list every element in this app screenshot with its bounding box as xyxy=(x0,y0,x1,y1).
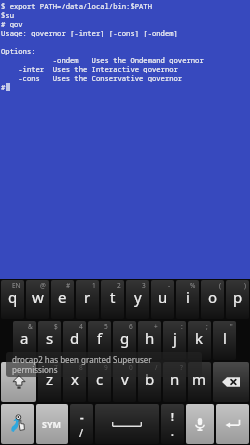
staticText: m xyxy=(192,369,207,389)
staticText: - xyxy=(80,409,84,424)
staticText: # xyxy=(66,281,71,290)
button[interactable]: $ xyxy=(38,321,61,360)
button[interactable]: 6 xyxy=(113,321,136,360)
staticText: : xyxy=(181,322,183,331)
staticText: p xyxy=(233,287,243,307)
staticText: v xyxy=(121,369,129,389)
button[interactable]: - xyxy=(151,280,174,319)
staticText: j xyxy=(173,328,177,348)
button[interactable]: 5 xyxy=(88,321,111,360)
staticText: " xyxy=(230,322,233,331)
staticText: -ondem Uses the Ondemand governor xyxy=(1,55,204,64)
staticText: & xyxy=(28,322,33,331)
staticText: $ export PATH=/data/local/bin:$PATH xyxy=(1,1,152,10)
staticText: n xyxy=(170,369,180,389)
button[interactable]: - xyxy=(70,404,93,444)
staticText: h xyxy=(145,328,155,348)
staticText: / xyxy=(79,425,84,440)
button[interactable]: Space xyxy=(95,404,159,444)
staticText: t xyxy=(110,287,116,307)
staticText: drocap2 has been granted Superuser permi… xyxy=(12,354,196,375)
staticText: + xyxy=(154,322,158,331)
staticText: @ xyxy=(40,281,46,290)
button[interactable]: Backspace xyxy=(213,362,249,402)
button[interactable]: Voice input xyxy=(186,404,214,444)
staticText: 9 xyxy=(104,363,108,372)
staticText: ) xyxy=(244,281,246,290)
staticText: 1 xyxy=(92,281,96,290)
staticText: EN xyxy=(12,281,21,290)
staticText: $ xyxy=(54,322,58,331)
staticText: x xyxy=(71,369,79,389)
staticText: s xyxy=(46,328,54,348)
button[interactable]: ? xyxy=(163,362,186,402)
button[interactable]: 9 xyxy=(88,362,111,402)
staticText: SYM xyxy=(42,418,62,430)
staticText: Options: xyxy=(1,46,36,55)
button[interactable]: % xyxy=(176,280,199,319)
button[interactable]: # xyxy=(51,280,74,319)
button[interactable]: 2 xyxy=(101,280,124,319)
staticText: y xyxy=(134,287,142,307)
staticText: b xyxy=(145,369,155,389)
button[interactable]: ) xyxy=(226,280,249,319)
staticText: e xyxy=(58,287,67,307)
button[interactable]: 7 xyxy=(38,362,61,402)
button[interactable]: m xyxy=(188,362,211,402)
staticText: g xyxy=(120,328,130,348)
staticText: $su xyxy=(1,10,14,19)
staticText: 0 xyxy=(129,363,133,372)
staticText: r xyxy=(84,287,91,307)
staticText: ! xyxy=(171,410,174,424)
staticText: o xyxy=(208,287,218,307)
staticText: -inter Uses the Interactive governor xyxy=(1,64,178,73)
staticText: l xyxy=(223,328,227,348)
button[interactable]: / xyxy=(138,362,161,402)
staticText: w xyxy=(32,287,44,307)
staticText: ? xyxy=(180,363,183,372)
staticText: Usage: governor [-inter] [-cons] [-ondem… xyxy=(1,28,178,37)
staticText: # gov xyxy=(1,19,23,28)
button[interactable]: Shift xyxy=(1,362,36,402)
staticText: 8 xyxy=(79,363,83,372)
staticText: # xyxy=(1,82,6,91)
staticText: - xyxy=(168,281,171,290)
button[interactable]: & xyxy=(13,321,36,360)
button[interactable]: ; xyxy=(188,321,211,360)
button[interactable]: : xyxy=(163,321,186,360)
button[interactable]: + xyxy=(138,321,161,360)
staticText: q xyxy=(8,287,18,307)
staticText: . xyxy=(171,425,174,439)
staticText: z xyxy=(46,369,54,389)
staticText: c xyxy=(96,369,104,389)
staticText: 7 xyxy=(54,363,58,372)
staticText: d xyxy=(70,328,80,348)
button[interactable]: Input method xyxy=(1,404,34,444)
button[interactable]: EN xyxy=(1,280,24,319)
staticText: 5 xyxy=(104,322,108,331)
button[interactable]: ( xyxy=(201,280,224,319)
staticText: f xyxy=(97,328,103,348)
button[interactable]: " xyxy=(213,321,236,360)
button[interactable]: 4 xyxy=(63,321,86,360)
staticText: k xyxy=(195,328,204,348)
button[interactable]: @ xyxy=(26,280,49,319)
button[interactable]: 0 xyxy=(113,362,136,402)
button[interactable]: Symbols xyxy=(36,404,68,444)
staticText: ( xyxy=(219,281,221,290)
staticText: -cons Uses the Conservative governor xyxy=(1,73,183,82)
staticText: % xyxy=(190,281,196,290)
staticText: 2 xyxy=(117,281,121,290)
staticText: ; xyxy=(206,322,208,331)
button[interactable]: Enter xyxy=(216,404,249,444)
staticText: i xyxy=(186,287,190,307)
staticText: 4 xyxy=(79,322,83,331)
staticText: 6 xyxy=(129,322,133,331)
button[interactable]: ! xyxy=(161,404,184,444)
button[interactable]: 1 xyxy=(76,280,99,319)
staticText: 3 xyxy=(142,281,146,290)
staticText: / xyxy=(155,363,158,372)
button[interactable]: 3 xyxy=(126,280,149,319)
button[interactable]: 8 xyxy=(63,362,86,402)
staticText: a xyxy=(20,328,29,348)
